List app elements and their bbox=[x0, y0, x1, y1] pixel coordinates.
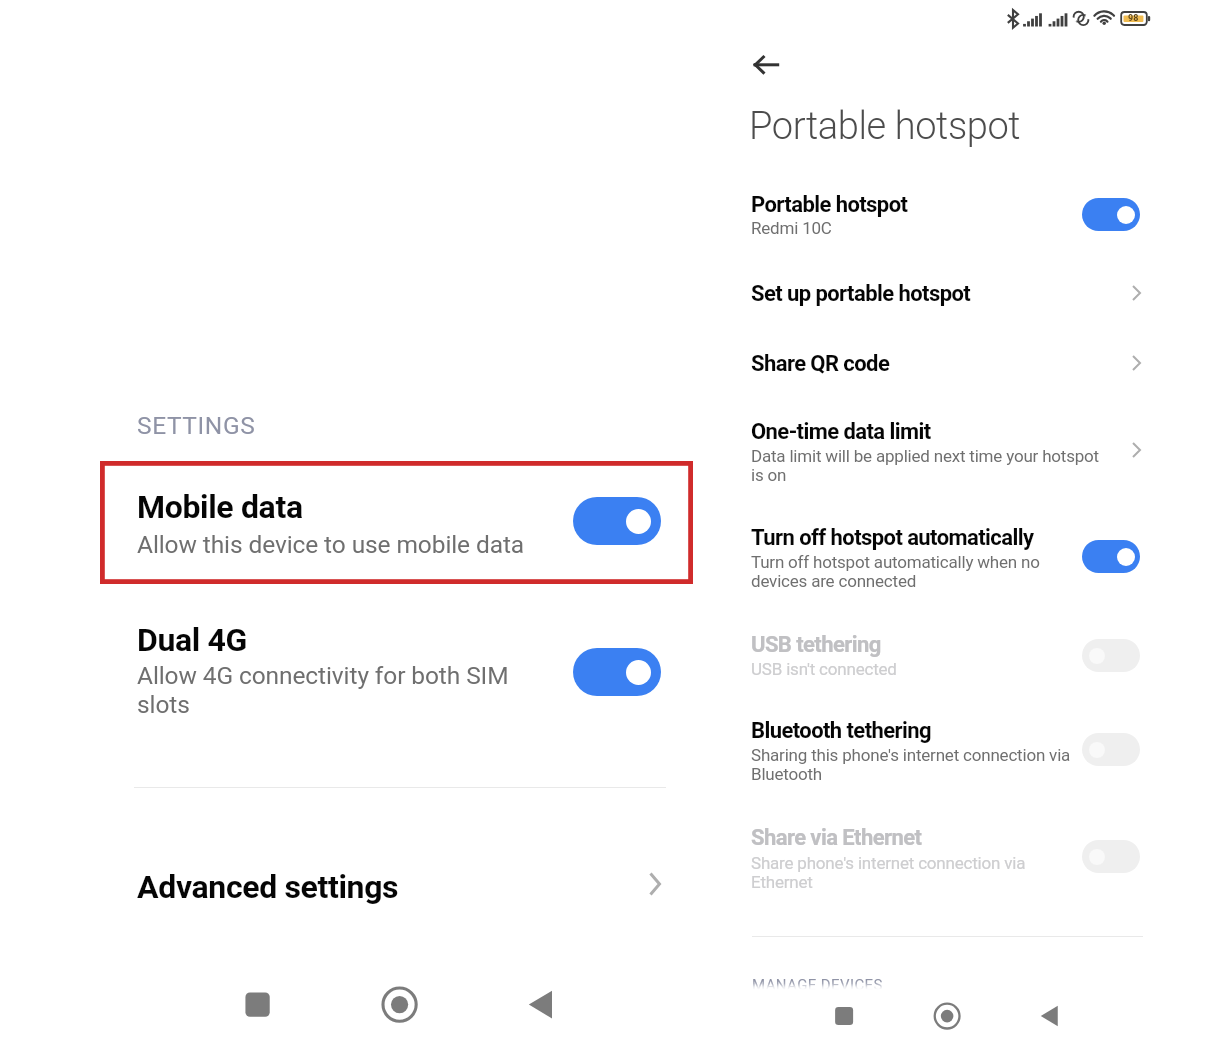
staticText: Data limit will be applied next time you… bbox=[751, 446, 1099, 485]
button[interactable]: Switch on bbox=[573, 648, 661, 696]
button[interactable]: Mobile data bbox=[100, 461, 693, 584]
staticText: USB tethering bbox=[751, 632, 881, 658]
staticText: MANAGE DEVICES bbox=[752, 976, 883, 994]
staticText: Share QR code bbox=[751, 351, 890, 377]
staticText: Advanced settings bbox=[137, 868, 399, 906]
button[interactable]: Bluetooth tethering bbox=[730, 708, 1210, 789]
button[interactable]: Switch off bbox=[1082, 733, 1140, 766]
staticText: Set up portable hotspot bbox=[751, 281, 971, 307]
button[interactable]: Switch on bbox=[1082, 540, 1140, 573]
staticText: SETTINGS bbox=[137, 411, 256, 440]
staticText: Redmi 10C bbox=[751, 218, 832, 238]
staticText: Portable hotspot bbox=[751, 192, 908, 218]
staticText: Turn off hotspot automatically when no d… bbox=[751, 552, 1040, 591]
staticText: One-time data limit bbox=[751, 419, 931, 445]
button[interactable]: Share via Ethernet bbox=[730, 815, 1210, 897]
button[interactable]: Dual 4G bbox=[100, 600, 693, 735]
button[interactable]: Home bbox=[378, 983, 421, 1026]
button[interactable]: Share QR code bbox=[730, 341, 1210, 377]
button[interactable]: Back bbox=[520, 983, 563, 1026]
staticText: Allow this device to use mobile data bbox=[137, 530, 525, 559]
button[interactable]: Advanced settings bbox=[100, 846, 693, 924]
button[interactable]: Switch off bbox=[1082, 840, 1140, 873]
staticText: Portable hotspot bbox=[749, 104, 1021, 149]
staticText: Share phone's internet connection via Et… bbox=[751, 853, 1026, 892]
button[interactable]: One-time data limit bbox=[730, 409, 1210, 490]
button[interactable]: Turn off hotspot automatically bbox=[730, 515, 1210, 596]
button[interactable]: Switch on bbox=[1082, 198, 1140, 231]
button[interactable]: Back bbox=[1034, 1000, 1066, 1032]
staticText: Sharing this phone's internet connection… bbox=[751, 745, 1071, 784]
button[interactable]: USB tethering bbox=[730, 622, 1210, 684]
staticText: Dual 4G bbox=[137, 621, 248, 659]
button[interactable]: Switch on bbox=[573, 497, 661, 545]
button[interactable]: Set up portable hotspot bbox=[730, 271, 1210, 307]
staticText: Turn off hotspot automatically bbox=[751, 525, 1034, 551]
staticText: Bluetooth tethering bbox=[751, 718, 932, 744]
button[interactable]: Recent apps bbox=[828, 1000, 860, 1032]
staticText: Mobile data bbox=[137, 488, 303, 526]
button[interactable]: Home bbox=[931, 1000, 963, 1032]
button[interactable]: Back bbox=[735, 44, 783, 92]
staticText: 98 bbox=[1128, 13, 1139, 24]
staticText: Share via Ethernet bbox=[751, 825, 922, 851]
staticText: Allow 4G connectivity for both SIM slots bbox=[137, 661, 525, 719]
button[interactable]: Portable hotspot bbox=[730, 182, 1210, 243]
staticText: USB isn't connected bbox=[751, 659, 897, 679]
button[interactable]: Recent apps bbox=[236, 983, 279, 1026]
button[interactable]: Switch off bbox=[1082, 639, 1140, 672]
